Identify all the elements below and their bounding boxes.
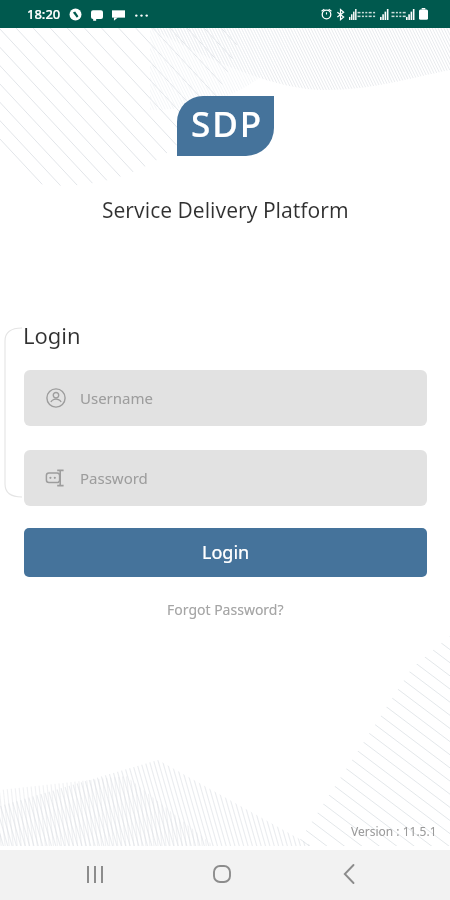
button[interactable]: Recent apps: [32, 850, 158, 898]
button[interactable]: Password: [24, 450, 427, 506]
staticText: SDP: [191, 100, 264, 148]
button[interactable]: Username: [24, 370, 427, 426]
staticText: Login: [23, 320, 81, 350]
button[interactable]: Home: [158, 850, 285, 898]
staticText: Version : 11.5.1: [351, 823, 437, 839]
staticText: Username: [80, 388, 153, 408]
button[interactable]: Back: [285, 850, 412, 898]
staticText: 18:20: [27, 5, 61, 23]
staticText: Password: [80, 468, 148, 488]
staticText: Login: [202, 540, 250, 565]
button[interactable]: Forgot Password?: [163, 596, 288, 623]
staticText: Service Delivery Platform: [102, 196, 349, 225]
button[interactable]: Login: [24, 528, 427, 577]
